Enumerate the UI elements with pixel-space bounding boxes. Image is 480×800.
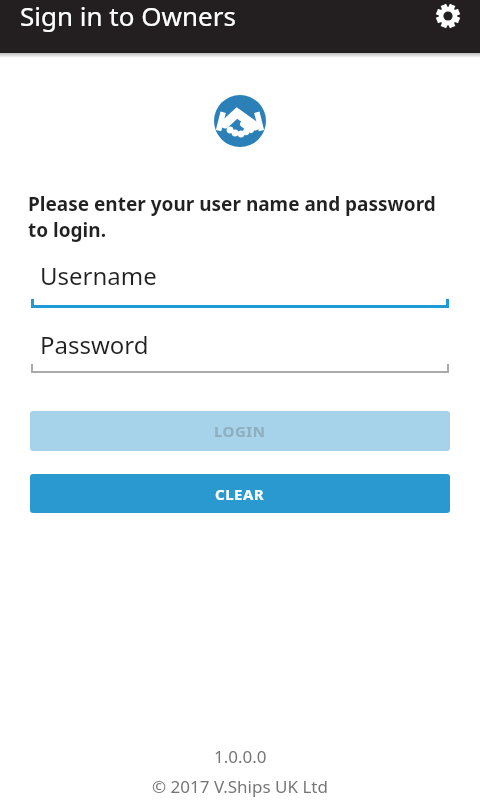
staticText: © 2017 V.Ships UK Ltd: [152, 775, 328, 798]
staticText: LOGIN: [214, 421, 266, 441]
staticText: Sign in to Owners: [20, 0, 236, 33]
staticText: Please enter your user name and password…: [28, 191, 436, 242]
button[interactable]: LOGIN: [30, 411, 450, 451]
staticText: CLEAR: [215, 484, 265, 504]
staticText: Password: [40, 328, 149, 361]
staticText: 1.0.0.0: [214, 745, 267, 768]
button[interactable]: CLEAR: [30, 474, 450, 513]
button[interactable]: [435, 3, 461, 29]
staticText: Username: [40, 259, 157, 292]
